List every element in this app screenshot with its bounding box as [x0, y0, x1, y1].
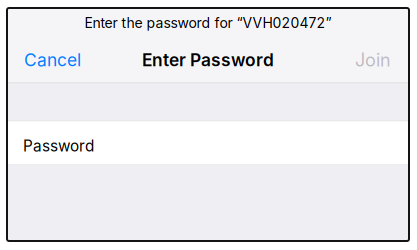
staticText: Enter Password [142, 49, 274, 70]
staticText: Enter the password for “VVH020472” [84, 14, 331, 31]
button[interactable]: Join [337, 37, 409, 82]
staticText: Join [355, 49, 391, 71]
button[interactable]: Password [7, 121, 409, 164]
button[interactable]: Cancel [7, 37, 98, 82]
staticText: Cancel [24, 49, 81, 70]
staticText: Password [23, 137, 94, 155]
